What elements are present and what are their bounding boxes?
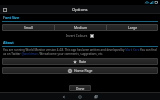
staticText: Large [128,25,138,30]
staticText: You are running World Monitor version 4.… [3,48,157,56]
staticText: Options [72,7,88,13]
staticText: Home Page [74,68,93,73]
staticText: Done [76,86,85,90]
button[interactable]: Done [69,85,91,91]
button[interactable]: Invert Colours [0,33,160,39]
button[interactable]: Medium [55,24,106,31]
button[interactable]: Back [61,94,67,100]
button[interactable]: App icon [2,7,7,12]
button[interactable]: Rate [2,58,158,65]
staticText: About [3,40,14,45]
staticText: Small [24,25,33,30]
button[interactable]: Home [77,94,83,100]
button[interactable]: Small [2,24,54,31]
staticText: Medium [74,25,88,30]
staticText: Rate [79,59,87,64]
button[interactable]: Large [107,24,158,31]
button[interactable]: Home Page [2,67,158,74]
staticText: Invert Colours [66,34,88,38]
staticText: Font Size [3,15,20,20]
button[interactable]: Recent apps [93,94,99,100]
